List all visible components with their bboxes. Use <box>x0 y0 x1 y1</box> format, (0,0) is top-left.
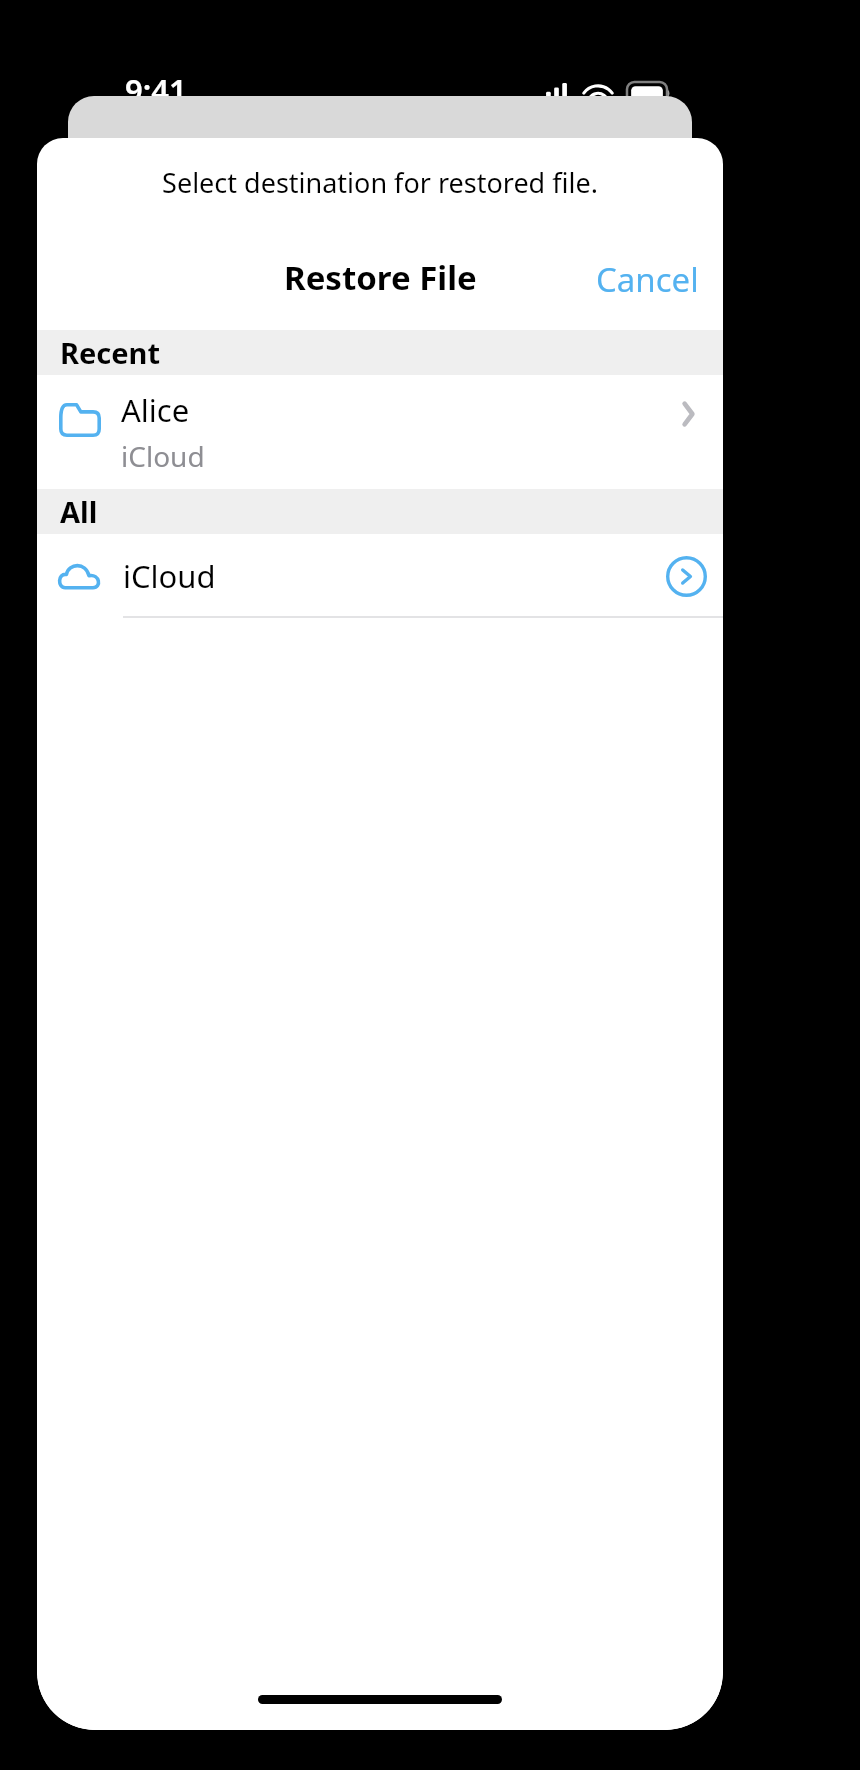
staticText: iCloud <box>121 437 205 475</box>
other: Open Alice folder <box>673 399 703 429</box>
staticText: Select destination for restored file. <box>37 164 723 201</box>
button[interactable]: Cancel <box>572 245 723 309</box>
staticText: Restore File <box>284 255 477 300</box>
button[interactable]: Browse iCloud <box>660 550 712 602</box>
staticText: Cancel <box>596 257 699 297</box>
staticText: iCloud <box>123 555 660 597</box>
staticText: 9:41 <box>125 69 187 111</box>
staticText: Recent <box>60 333 161 372</box>
staticText: Alice <box>121 389 190 431</box>
button[interactable]: Alice <box>37 375 723 489</box>
staticText: All <box>60 492 98 531</box>
button[interactable]: iCloud <box>37 534 723 618</box>
